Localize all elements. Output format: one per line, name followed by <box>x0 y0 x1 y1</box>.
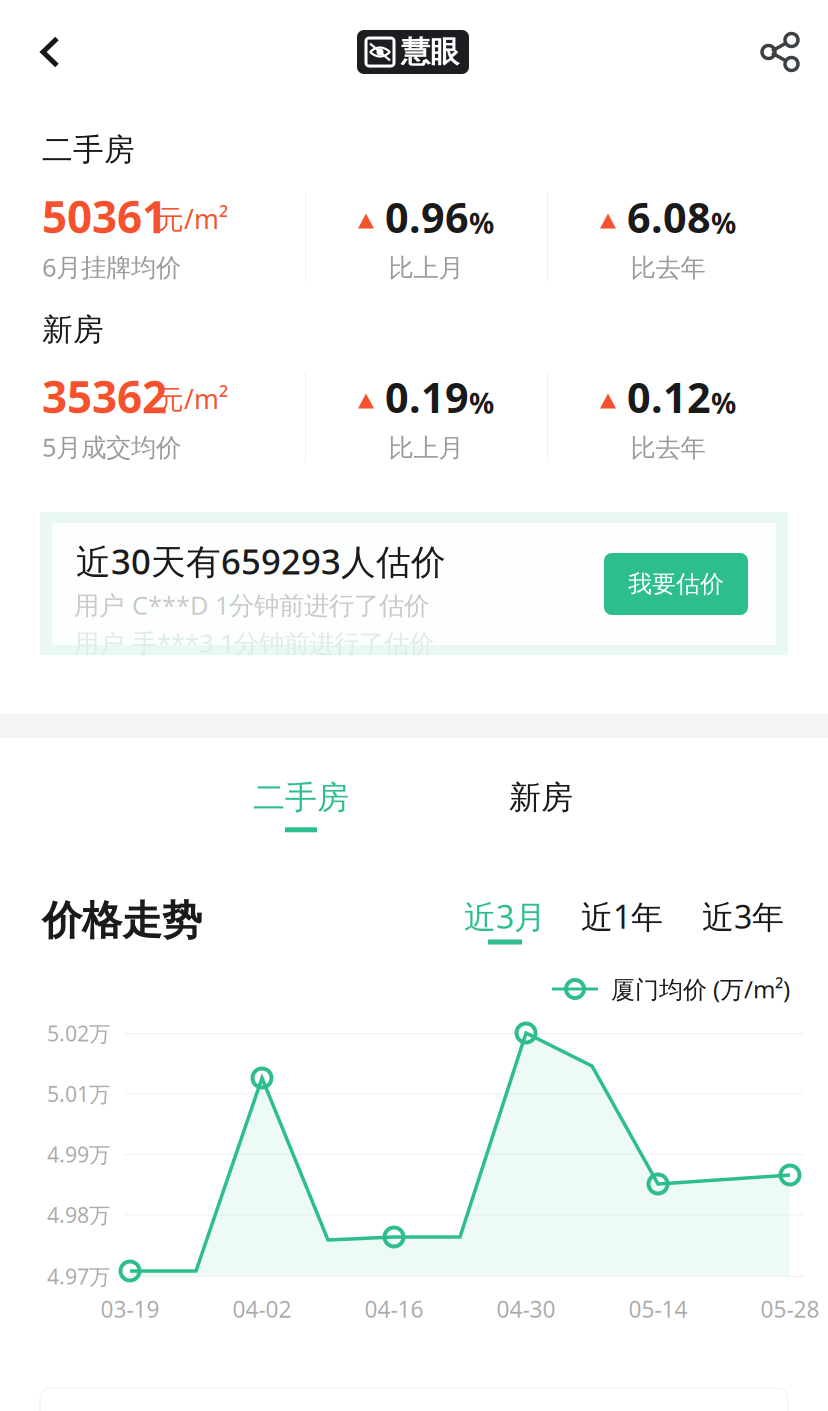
button[interactable]: 二手房 <box>253 778 349 832</box>
staticText: 比上月 <box>388 252 463 283</box>
staticText: 0.12 <box>627 370 711 424</box>
staticText: % <box>469 204 494 242</box>
staticText: 元/m² <box>157 381 228 416</box>
staticText: 04-02 <box>232 1294 291 1324</box>
staticText: % <box>469 384 494 422</box>
staticText: 04-30 <box>496 1294 555 1324</box>
staticText: 近1年 <box>581 895 663 937</box>
staticText: 05-28 <box>760 1294 819 1324</box>
button[interactable]: 近1年 <box>583 895 661 937</box>
staticText: 元/m² <box>157 201 228 236</box>
staticText: 近3年 <box>702 895 784 937</box>
staticText: % <box>711 384 736 422</box>
staticText: 35362 <box>42 367 167 425</box>
staticText: 0.96 <box>385 190 469 244</box>
staticText: 新房 <box>42 311 104 349</box>
staticText: 比上月 <box>388 432 463 463</box>
staticText: 5.01万 <box>47 1079 110 1108</box>
button[interactable]: 我要估价 <box>604 553 748 615</box>
staticText: 用户 手***3 1分钟前进行了估价 <box>74 626 434 660</box>
staticText: 我要估价 <box>628 569 724 599</box>
staticText: 近30天有659293人估价 <box>76 538 446 584</box>
staticText: 0.19 <box>385 370 469 424</box>
staticText: 4.97万 <box>47 1262 110 1290</box>
staticText: 用户 C***D 1分钟前进行了估价 <box>74 588 429 622</box>
staticText: 4.99万 <box>47 1140 110 1168</box>
staticText: 5月成交均价 <box>42 430 181 464</box>
staticText: 6月挂牌均价 <box>42 250 181 284</box>
button[interactable]: 新房 <box>508 778 574 832</box>
staticText: 5.02万 <box>47 1019 110 1047</box>
staticText: % <box>711 204 736 242</box>
button[interactable]: Back <box>14 10 86 94</box>
staticText: 50361 <box>42 187 167 245</box>
button[interactable]: Share <box>744 10 816 94</box>
staticText: 4.98万 <box>47 1200 110 1229</box>
staticText: 比去年 <box>630 432 705 463</box>
staticText: 二手房 <box>253 778 349 817</box>
staticText: 价格走势 <box>42 896 202 945</box>
staticText: 近3月 <box>464 895 546 937</box>
staticText: 05-14 <box>628 1294 687 1324</box>
staticText: 04-16 <box>364 1294 423 1324</box>
staticText: 比去年 <box>630 252 705 283</box>
staticText: 03-19 <box>100 1294 159 1324</box>
staticText: 新房 <box>509 778 573 817</box>
staticText: 厦门均价 (万/m²) <box>611 973 790 1005</box>
button[interactable]: 近3月 <box>466 895 544 944</box>
button[interactable]: 近3年 <box>702 895 784 937</box>
staticText: 慧眼 <box>401 34 459 70</box>
staticText: 二手房 <box>42 131 135 169</box>
staticText: 6.08 <box>627 190 711 244</box>
